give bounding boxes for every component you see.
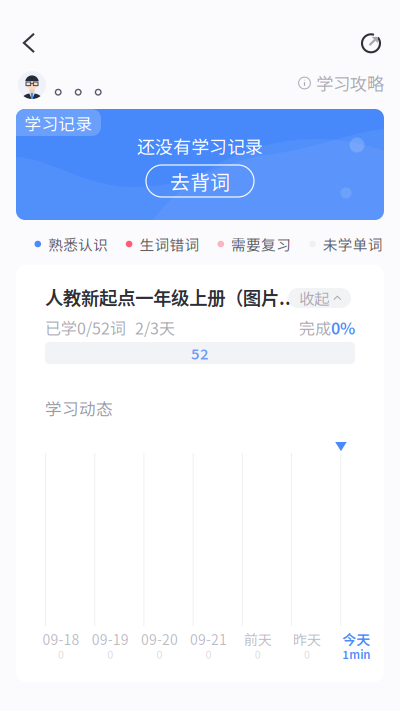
staticText: 0: [206, 646, 212, 662]
staticText: 还没有学习记录: [137, 133, 263, 159]
staticText: 09-20: [141, 629, 178, 649]
button[interactable]: Profile: [18, 71, 46, 99]
staticText: 生词错词: [139, 233, 199, 255]
staticText: 熟悉认识: [48, 233, 108, 255]
staticText: 09-18: [42, 629, 79, 649]
staticText: 0%: [331, 316, 355, 339]
staticText: 已学0/52词: [45, 316, 126, 339]
button[interactable]: 去背词: [146, 165, 254, 197]
button[interactable]: Back: [7, 21, 51, 65]
staticText: 去背词: [170, 166, 230, 195]
staticText: 09-21: [190, 629, 227, 649]
staticText: 0: [156, 646, 162, 662]
button[interactable]: Refresh: [349, 21, 393, 65]
staticText: 学习记录: [24, 111, 92, 135]
staticText: 学习动态: [45, 396, 113, 420]
staticText: 52: [191, 342, 209, 364]
staticText: 0: [107, 646, 113, 662]
button[interactable]: 收起: [288, 288, 351, 308]
staticText: 0: [304, 646, 310, 662]
staticText: 昨天: [293, 629, 321, 649]
staticText: 需要复习: [231, 233, 291, 255]
staticText: 1min: [342, 646, 370, 662]
staticText: 未学单词: [323, 233, 383, 255]
staticText: 今天: [342, 629, 370, 649]
staticText: 前天: [244, 629, 272, 649]
staticText: 人教新起点一年级上册（图片...: [45, 284, 297, 310]
staticText: 0: [255, 646, 261, 662]
button[interactable]: 学习攻略: [294, 72, 384, 94]
staticText: 0: [58, 646, 64, 662]
staticText: 09-19: [92, 629, 129, 649]
staticText: 收起: [299, 287, 329, 309]
staticText: 学习攻略: [316, 70, 384, 96]
staticText: 2/3天: [135, 316, 175, 339]
staticText: 完成: [299, 316, 331, 339]
